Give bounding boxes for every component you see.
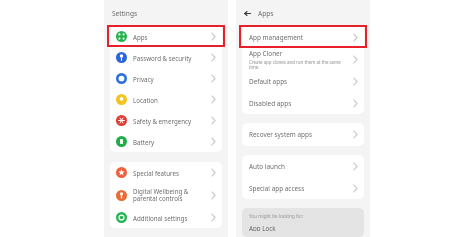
button[interactable]: App Cloner — [242, 48, 364, 70]
staticText: Special features — [133, 169, 210, 177]
staticText: App Cloner — [249, 49, 283, 58]
staticText: Auto launch — [249, 162, 286, 171]
button[interactable]: Privacy — [110, 68, 222, 89]
staticText: Settings — [112, 9, 138, 18]
button[interactable]: Password & security — [110, 47, 222, 68]
button[interactable]: Special features — [110, 162, 222, 183]
button[interactable]: Disabled apps — [242, 92, 364, 114]
staticText: App management — [249, 33, 304, 42]
staticText: Location — [133, 96, 210, 104]
staticText: Default apps — [249, 77, 288, 86]
staticText: Safety & emergency — [133, 117, 210, 125]
staticText: You might be looking for: — [249, 213, 304, 219]
button[interactable]: Back — [243, 9, 252, 18]
staticText: Password & security — [133, 54, 210, 62]
button[interactable]: App Lock — [249, 224, 276, 231]
button[interactable]: Location — [110, 89, 222, 110]
staticText: Apps — [258, 9, 274, 18]
button[interactable]: Digital Wellbeing & parental controls — [110, 183, 222, 207]
staticText: Additional settings — [133, 214, 210, 222]
button[interactable]: Apps — [110, 26, 222, 47]
staticText: Privacy — [133, 75, 210, 83]
button[interactable]: Special app access — [242, 177, 364, 199]
staticText: Apps — [133, 33, 210, 41]
button[interactable]: Additional settings — [110, 207, 222, 228]
button[interactable]: Recover system apps — [242, 123, 364, 146]
staticText: Disabled apps — [249, 99, 292, 108]
button[interactable]: App management — [242, 26, 364, 48]
staticText: App Lock — [249, 224, 276, 231]
staticText: Special app access — [249, 184, 305, 193]
staticText: Recover system apps — [249, 130, 312, 139]
button[interactable]: Safety & emergency — [110, 110, 222, 131]
button[interactable]: Battery — [110, 131, 222, 152]
button[interactable]: Auto launch — [242, 155, 364, 177]
staticText: Battery — [133, 138, 210, 146]
staticText: Create app clones and run them at the sa… — [249, 59, 352, 70]
staticText: Digital Wellbeing & parental controls — [133, 187, 210, 203]
button[interactable]: Default apps — [242, 70, 364, 92]
